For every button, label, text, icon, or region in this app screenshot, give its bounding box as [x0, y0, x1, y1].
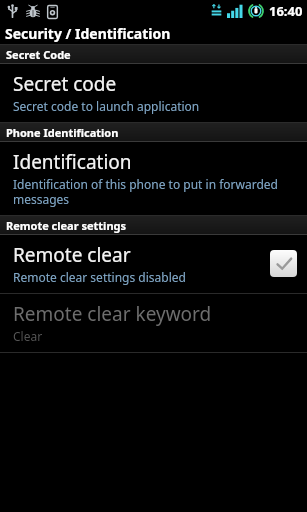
staticText: Remote clear settings — [6, 218, 127, 233]
staticText: Remote clear — [13, 242, 131, 268]
button[interactable]: Identification — [0, 142, 307, 215]
staticText: Identification of this phone to put in f… — [13, 176, 297, 207]
button[interactable]: Remote clear keyword — [0, 294, 307, 352]
staticText: Security / Identification — [5, 24, 171, 43]
staticText: Remote clear settings disabled — [13, 269, 186, 285]
staticText: 16:40 — [269, 2, 303, 20]
staticText: Secret Code — [6, 47, 71, 62]
staticText: Identification — [13, 149, 132, 175]
staticText: Phone Identification — [6, 125, 119, 140]
staticText: Secret code to launch application — [13, 98, 200, 114]
staticText: Clear — [13, 328, 43, 344]
staticText: Remote clear keyword — [13, 301, 212, 327]
button[interactable]: Remote clear — [0, 235, 307, 293]
staticText: Secret code — [13, 71, 117, 97]
button[interactable]: Remote clear toggle — [270, 250, 297, 277]
button[interactable]: Secret code — [0, 64, 307, 122]
